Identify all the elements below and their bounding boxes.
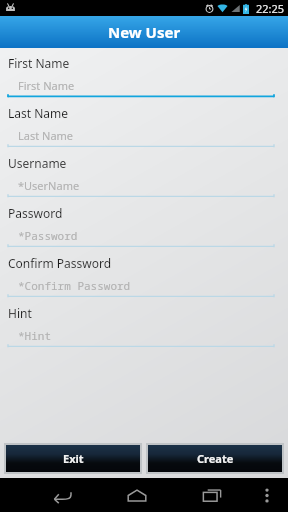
staticText: *Password: [18, 228, 78, 243]
staticText: *Confirm Password: [18, 278, 131, 293]
staticText: *Hint: [18, 328, 51, 343]
button[interactable]: Back: [40, 478, 84, 512]
button[interactable]: Password: [6, 205, 275, 255]
staticText: Hint: [8, 305, 32, 321]
staticText: Exit: [63, 451, 84, 466]
button[interactable]: Hint: [6, 305, 275, 355]
button[interactable]: Home: [115, 478, 159, 512]
staticText: First Name: [8, 55, 70, 71]
button[interactable]: Username: [6, 155, 275, 205]
staticText: First Name: [18, 78, 75, 93]
button[interactable]: Last Name: [6, 105, 275, 155]
button[interactable]: Recent apps: [190, 478, 234, 512]
staticText: New User: [108, 22, 181, 42]
staticText: Create: [197, 451, 234, 466]
staticText: Password: [8, 205, 63, 221]
staticText: Last Name: [8, 105, 69, 121]
button[interactable]: Exit: [6, 445, 140, 472]
staticText: Username: [8, 155, 67, 171]
button[interactable]: Confirm Password: [6, 255, 275, 305]
staticText: *UserName: [18, 178, 80, 193]
staticText: 22:25: [256, 1, 285, 16]
button[interactable]: First Name: [6, 55, 275, 105]
staticText: Last Name: [18, 128, 74, 143]
button[interactable]: More options: [254, 478, 280, 512]
staticText: Confirm Password: [8, 255, 112, 271]
button[interactable]: Create: [148, 445, 282, 472]
